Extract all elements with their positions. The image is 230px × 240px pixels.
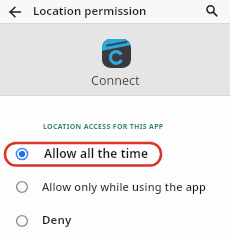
staticText: Connect	[91, 72, 140, 89]
button[interactable]	[198, 0, 230, 23]
button[interactable]	[0, 0, 30, 23]
staticText: LOCATION ACCESS FOR THIS APP	[43, 122, 164, 132]
staticText: Deny	[42, 212, 72, 228]
button[interactable]: Allow all the time	[0, 137, 230, 171]
button[interactable]: Allow only while using the app	[0, 170, 230, 204]
staticText: Allow only while using the app	[42, 179, 207, 194]
button[interactable]: Deny	[0, 204, 230, 238]
staticText: Allow all the time	[44, 145, 149, 161]
staticText: Location permission	[33, 3, 147, 19]
